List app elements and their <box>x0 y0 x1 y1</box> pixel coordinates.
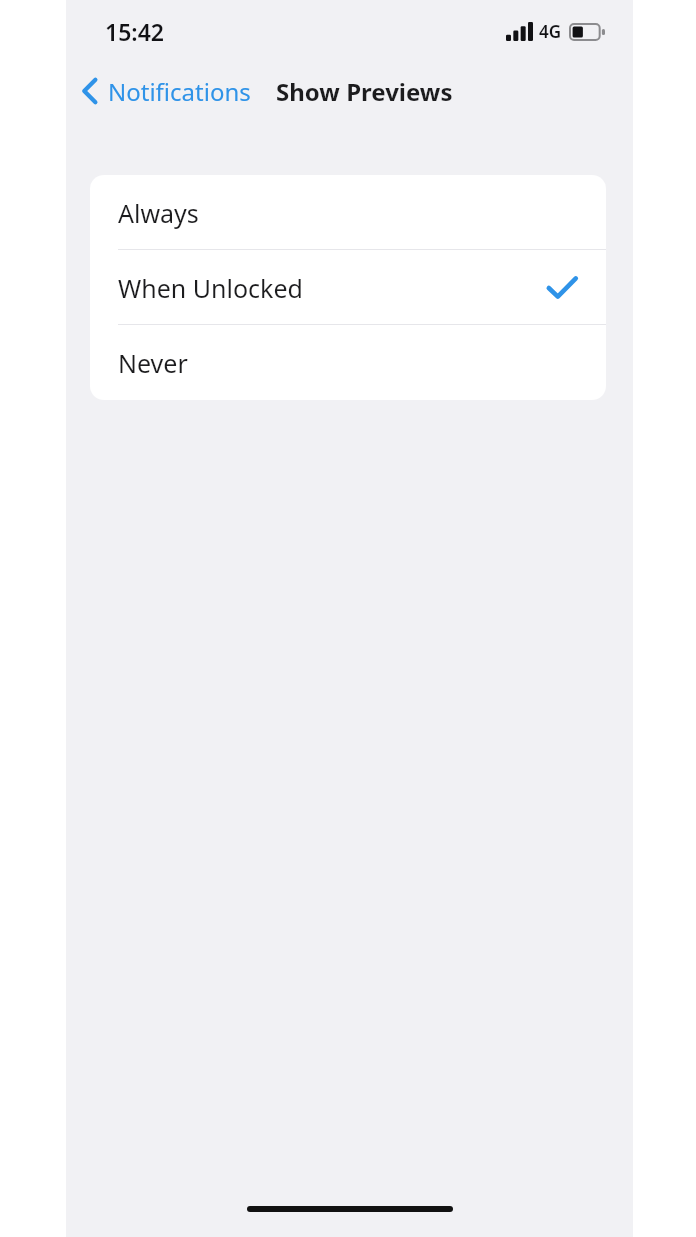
other: Selected <box>547 276 577 300</box>
staticText: 4G <box>539 20 562 43</box>
staticText: Always <box>118 196 199 230</box>
staticText: Never <box>118 346 188 380</box>
staticText: 15:42 <box>105 16 164 47</box>
other: Cellular signal <box>506 22 533 41</box>
staticText: When Unlocked <box>118 271 303 305</box>
button[interactable]: Always <box>90 175 606 250</box>
staticText: Notifications <box>108 75 251 108</box>
button[interactable]: Never <box>90 325 606 400</box>
button[interactable]: When Unlocked <box>90 250 606 325</box>
staticText: Show Previews <box>276 75 453 108</box>
button[interactable]: Notifications <box>66 60 259 122</box>
other: Battery <box>569 23 605 41</box>
